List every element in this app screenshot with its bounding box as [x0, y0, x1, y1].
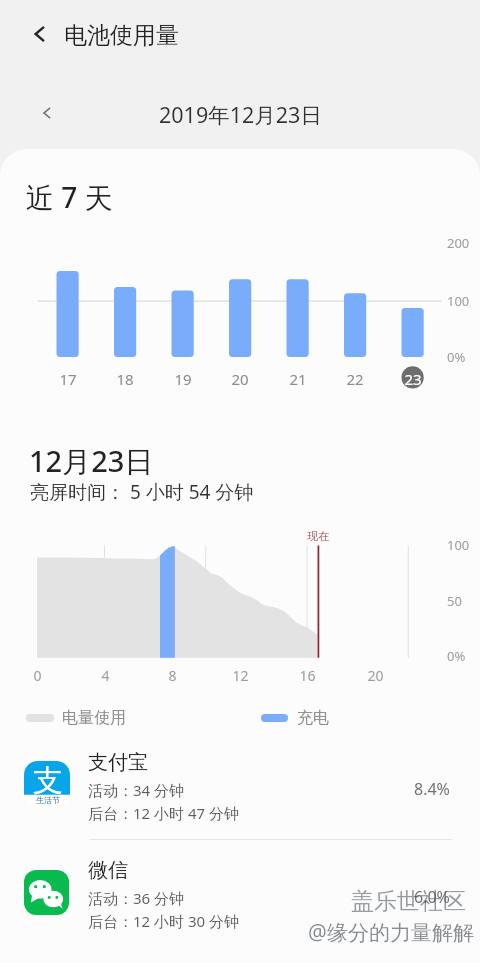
staticText: 21 [289, 369, 307, 389]
staticText: 电池使用量 [64, 21, 179, 50]
staticText: @缘分的力量解解 [308, 918, 474, 947]
staticText: 19 [174, 369, 192, 389]
staticText: 20 [231, 369, 249, 389]
staticText: 12月23日 [29, 441, 154, 481]
staticText: 22 [346, 369, 364, 389]
button[interactable]: Back [24, 18, 56, 50]
staticText: 现在 [307, 529, 329, 543]
staticText: 微信 [88, 858, 128, 883]
staticText: 200 [447, 234, 470, 252]
staticText: 20 [367, 666, 384, 685]
staticText: 18 [116, 369, 134, 389]
staticText: 2019年12月23日 [159, 100, 322, 129]
staticText: 电量使用 [62, 708, 126, 728]
staticText: 4 [101, 666, 110, 685]
staticText: 16 [299, 666, 316, 685]
staticText: 12 [232, 666, 249, 685]
staticText: 近 7 天 [26, 178, 113, 216]
staticText: 0 [33, 666, 42, 685]
staticText: 后台：12 小时 47 分钟 [88, 803, 240, 823]
button[interactable]: Previous day [32, 98, 62, 128]
staticText: 0% [447, 647, 466, 665]
button[interactable]: 充电 [261, 708, 329, 728]
staticText: 8 [168, 666, 177, 685]
staticText: 支 [33, 762, 63, 800]
staticText: 0% [447, 348, 466, 366]
staticText: 活动：34 分钟 [88, 780, 185, 800]
button[interactable]: 电量使用 [26, 708, 126, 728]
staticText: 6.0% [414, 886, 450, 908]
staticText: 支付宝 [88, 750, 148, 775]
staticText: 生活节 [36, 795, 60, 805]
staticText: 23 [404, 369, 422, 389]
staticText: 8.4% [414, 778, 450, 800]
staticText: 盖乐世社区 [351, 887, 466, 916]
button[interactable]: 支 [0, 740, 480, 838]
staticText: 50 [447, 592, 462, 610]
staticText: 亮屏时间： 5 小时 54 分钟 [30, 479, 254, 505]
staticText: 充电 [297, 708, 329, 728]
staticText: 后台：12 小时 30 分钟 [88, 911, 240, 931]
button[interactable]: 微信 [0, 848, 480, 946]
staticText: 17 [59, 369, 77, 389]
staticText: 100 [447, 292, 470, 310]
staticText: 100 [447, 536, 470, 554]
staticText: 活动：36 分钟 [88, 888, 185, 908]
